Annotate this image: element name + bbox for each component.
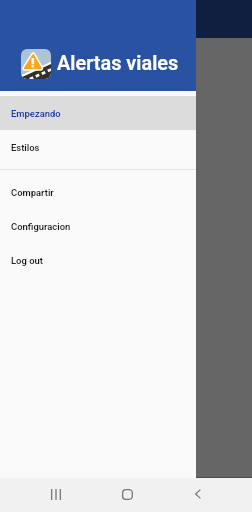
staticText: Configuracion: [11, 221, 71, 232]
button[interactable]: Estilos: [0, 130, 196, 164]
button[interactable]: Back: [177, 478, 219, 512]
staticText: Compartir: [11, 187, 54, 198]
staticText: Alertas viales: [57, 52, 179, 75]
button[interactable]: Home: [106, 478, 148, 512]
button[interactable]: Recent apps: [35, 478, 77, 512]
button[interactable]: Empezando: [0, 96, 196, 130]
button[interactable]: Log out: [0, 243, 196, 277]
staticText: Log out: [11, 255, 43, 266]
staticText: Empezando: [11, 108, 61, 119]
staticText: Estilos: [11, 142, 40, 153]
button[interactable]: Compartir: [0, 175, 196, 209]
button[interactable]: Configuracion: [0, 209, 196, 243]
